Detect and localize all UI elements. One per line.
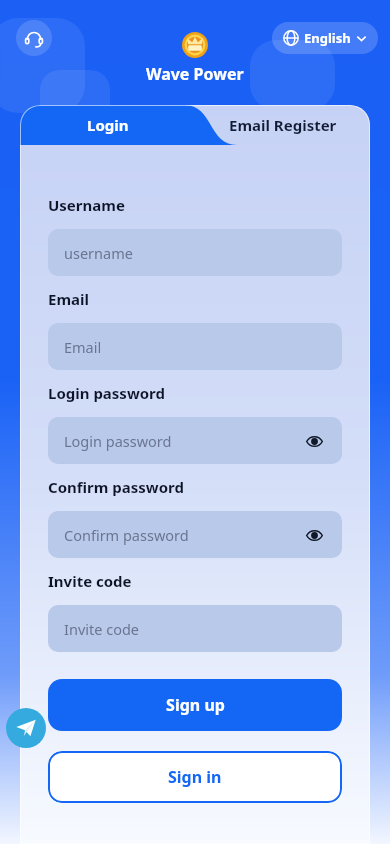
staticText: Sign up <box>166 694 225 716</box>
staticText: Login password <box>64 431 302 451</box>
staticText: Sign in <box>168 766 222 788</box>
button[interactable]: Show password <box>302 429 326 453</box>
button[interactable]: Customer support <box>16 20 52 56</box>
button[interactable]: Sign in <box>48 751 342 803</box>
button[interactable]: username <box>48 229 342 276</box>
button[interactable]: Email <box>48 323 342 370</box>
staticText: Username <box>48 195 125 215</box>
button[interactable]: Sign up <box>48 679 342 731</box>
staticText: Login <box>87 115 129 135</box>
staticText: Invite code <box>64 619 326 639</box>
staticText: English <box>304 29 351 47</box>
staticText: Confirm password <box>64 525 302 545</box>
button[interactable]: English <box>272 22 378 54</box>
button[interactable]: Show password <box>302 523 326 547</box>
staticText: Invite code <box>48 571 132 591</box>
staticText: Email <box>48 289 89 309</box>
staticText: Email <box>64 337 326 357</box>
staticText: Confirm password <box>48 477 184 497</box>
button[interactable]: Email Register <box>195 105 370 145</box>
staticText: Email Register <box>229 115 337 135</box>
button[interactable]: Login password <box>48 417 342 464</box>
button[interactable]: Login <box>20 105 195 145</box>
button[interactable]: Confirm password <box>48 511 342 558</box>
button[interactable]: Invite code <box>48 605 342 652</box>
staticText: username <box>64 243 326 263</box>
staticText: Wave Power <box>146 63 244 85</box>
button[interactable]: Telegram <box>6 708 46 748</box>
staticText: Login password <box>48 383 166 403</box>
